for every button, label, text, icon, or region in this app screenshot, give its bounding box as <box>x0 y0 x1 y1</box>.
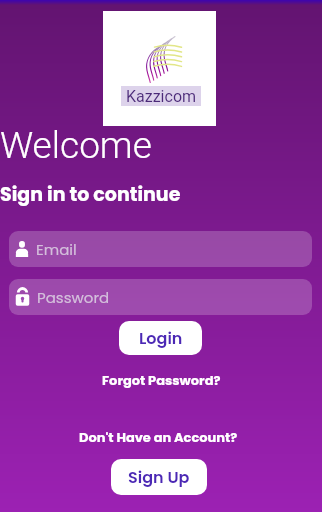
other: Password <box>15 288 30 306</box>
button[interactable]: Password <box>9 279 312 315</box>
staticText: Password <box>37 287 110 308</box>
staticText: Sign Up <box>128 466 190 488</box>
staticText: Welcome <box>0 124 152 167</box>
other: Email <box>15 241 29 257</box>
staticText: Don't Have an Account? <box>79 428 238 446</box>
staticText: Login <box>139 327 183 349</box>
staticText: Kazzicom <box>126 87 197 106</box>
staticText: Email <box>36 239 77 260</box>
button[interactable]: Forgot Password? <box>102 371 221 389</box>
button[interactable]: Email <box>9 231 312 267</box>
button[interactable]: Login <box>119 321 202 355</box>
button[interactable]: Sign Up <box>111 459 207 495</box>
staticText: Forgot Password? <box>102 371 221 389</box>
staticText: Sign in to continue <box>0 181 181 208</box>
